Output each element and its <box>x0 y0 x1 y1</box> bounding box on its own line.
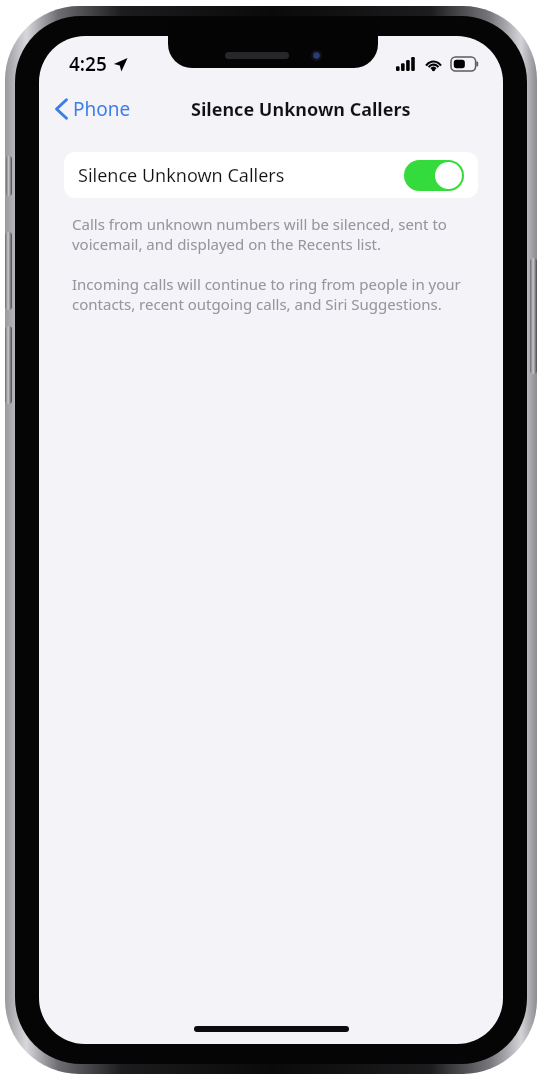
button[interactable]: Silence Unknown Callers toggle <box>404 160 464 191</box>
staticText: Incoming calls will continue to ring fro… <box>72 274 470 314</box>
button[interactable]: Phone <box>49 92 137 126</box>
staticText: Silence Unknown Callers <box>191 97 411 122</box>
staticText: Silence Unknown Callers <box>78 163 285 188</box>
staticText: Phone <box>73 96 131 122</box>
staticText: 4:25 <box>69 51 107 77</box>
staticText: Calls from unknown numbers will be silen… <box>72 214 470 254</box>
button[interactable]: Silence Unknown Callers <box>64 152 478 198</box>
